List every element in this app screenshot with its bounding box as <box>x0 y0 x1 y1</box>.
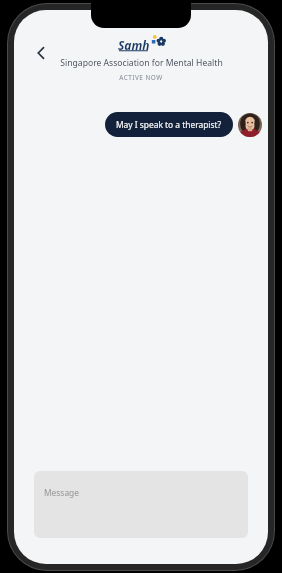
staticText: Message <box>44 487 79 498</box>
button[interactable]: Message <box>34 471 248 538</box>
button[interactable]: Back <box>24 36 58 70</box>
staticText: Samh <box>118 37 150 53</box>
button[interactable]: May I speak to a therapist? <box>105 112 233 137</box>
staticText: ACTIVE NOW <box>119 73 163 82</box>
staticText: Singapore Association for Mental Health <box>60 57 223 69</box>
button[interactable]: Profile photo <box>238 113 262 137</box>
staticText: May I speak to a therapist? <box>116 119 222 130</box>
